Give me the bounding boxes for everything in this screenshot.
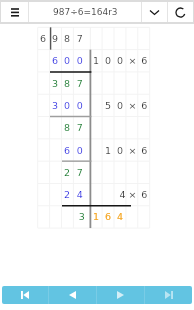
button[interactable]: Previous step — [49, 286, 96, 304]
button[interactable]: Menu — [1, 2, 28, 22]
button[interactable]: Skip to first — [2, 286, 48, 304]
button[interactable]: Skip to last — [145, 286, 192, 304]
staticText: 987÷6=164r3 — [53, 7, 118, 17]
button[interactable]: Expand — [142, 2, 167, 22]
button[interactable]: Refresh — [168, 2, 193, 22]
button[interactable]: Next step — [97, 286, 144, 304]
